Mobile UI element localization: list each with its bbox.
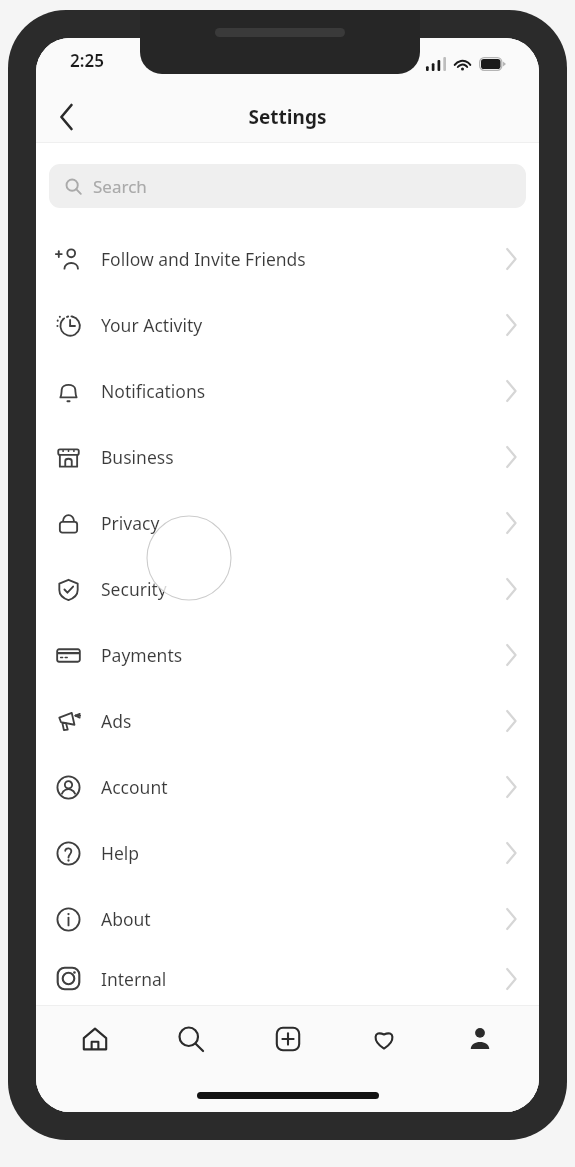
staticText: About [101,907,151,931]
button[interactable]: Payments [36,622,539,688]
button[interactable]: Ads [36,688,539,754]
button[interactable]: Security [36,556,539,622]
staticText: Internal [101,967,167,991]
staticText: Privacy [101,511,160,535]
staticText: Payments [101,643,183,667]
staticText: Your Activity [101,313,203,337]
button[interactable]: Home [58,1013,132,1065]
button[interactable]: About [36,886,539,952]
staticText: Ads [101,709,132,733]
staticText: Account [101,775,168,799]
staticText: 2:25 [70,49,104,72]
button[interactable]: Account [36,754,539,820]
staticText: Business [101,445,174,469]
button[interactable]: Notifications [36,358,539,424]
button[interactable]: Search [154,1013,228,1065]
button[interactable]: Your Activity [36,292,539,358]
staticText: Follow and Invite Friends [101,247,306,271]
button[interactable]: Search [49,164,526,208]
button[interactable]: Create new post [251,1013,325,1065]
button[interactable]: Follow and Invite Friends [36,226,539,292]
staticText: Help [101,841,140,865]
staticText: Search [93,175,147,198]
staticText: Security [101,577,167,601]
button[interactable]: Business [36,424,539,490]
button[interactable]: Profile [443,1013,517,1065]
button[interactable]: Back [36,90,98,143]
button[interactable]: Internal [36,952,539,1005]
staticText: Settings [36,104,539,130]
button[interactable]: Activity [347,1013,421,1065]
staticText: Notifications [101,379,206,403]
button[interactable]: Help [36,820,539,886]
button[interactable]: Privacy [36,490,539,556]
